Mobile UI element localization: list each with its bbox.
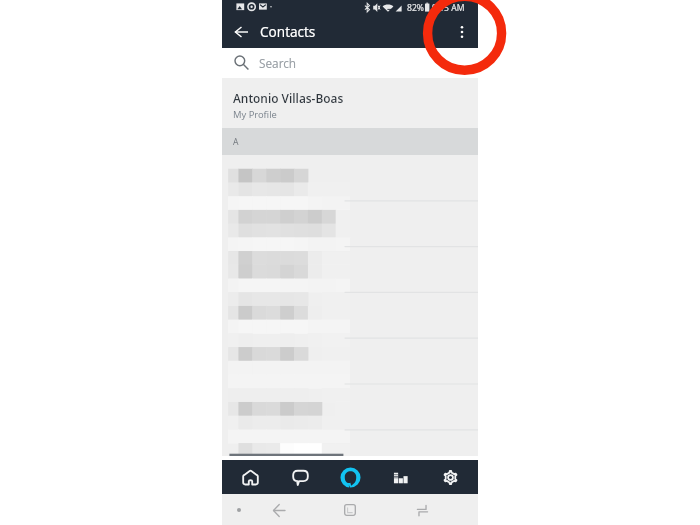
button[interactable] xyxy=(222,385,478,431)
button[interactable]: Home xyxy=(228,460,272,494)
button[interactable]: Antonio Villas-Boas xyxy=(222,78,478,128)
button[interactable]: Activity xyxy=(378,460,422,494)
button[interactable] xyxy=(222,339,478,385)
staticText: 9:15 AM xyxy=(432,2,465,14)
button[interactable]: Home xyxy=(336,496,364,524)
staticText: Contacts xyxy=(260,22,316,41)
staticText: My Profile xyxy=(233,108,277,121)
staticText: Search xyxy=(259,55,297,71)
staticText: 82% xyxy=(407,2,424,14)
button[interactable]: Messages xyxy=(278,460,322,494)
button[interactable] xyxy=(222,431,478,456)
button[interactable]: Back xyxy=(222,15,257,48)
button[interactable] xyxy=(222,293,478,339)
button[interactable]: Alexa xyxy=(328,460,372,494)
button[interactable]: Search xyxy=(222,48,478,78)
button[interactable] xyxy=(222,201,478,247)
button[interactable]: Recents xyxy=(408,496,436,524)
button[interactable] xyxy=(222,247,478,293)
button[interactable]: Back xyxy=(265,496,293,524)
button[interactable]: Settings xyxy=(428,460,472,494)
button[interactable]: More options xyxy=(447,15,477,48)
staticText: A xyxy=(233,136,239,148)
button[interactable] xyxy=(222,155,478,201)
staticText: Antonio Villas-Boas xyxy=(233,90,344,106)
button[interactable]: Assistant xyxy=(225,496,253,524)
